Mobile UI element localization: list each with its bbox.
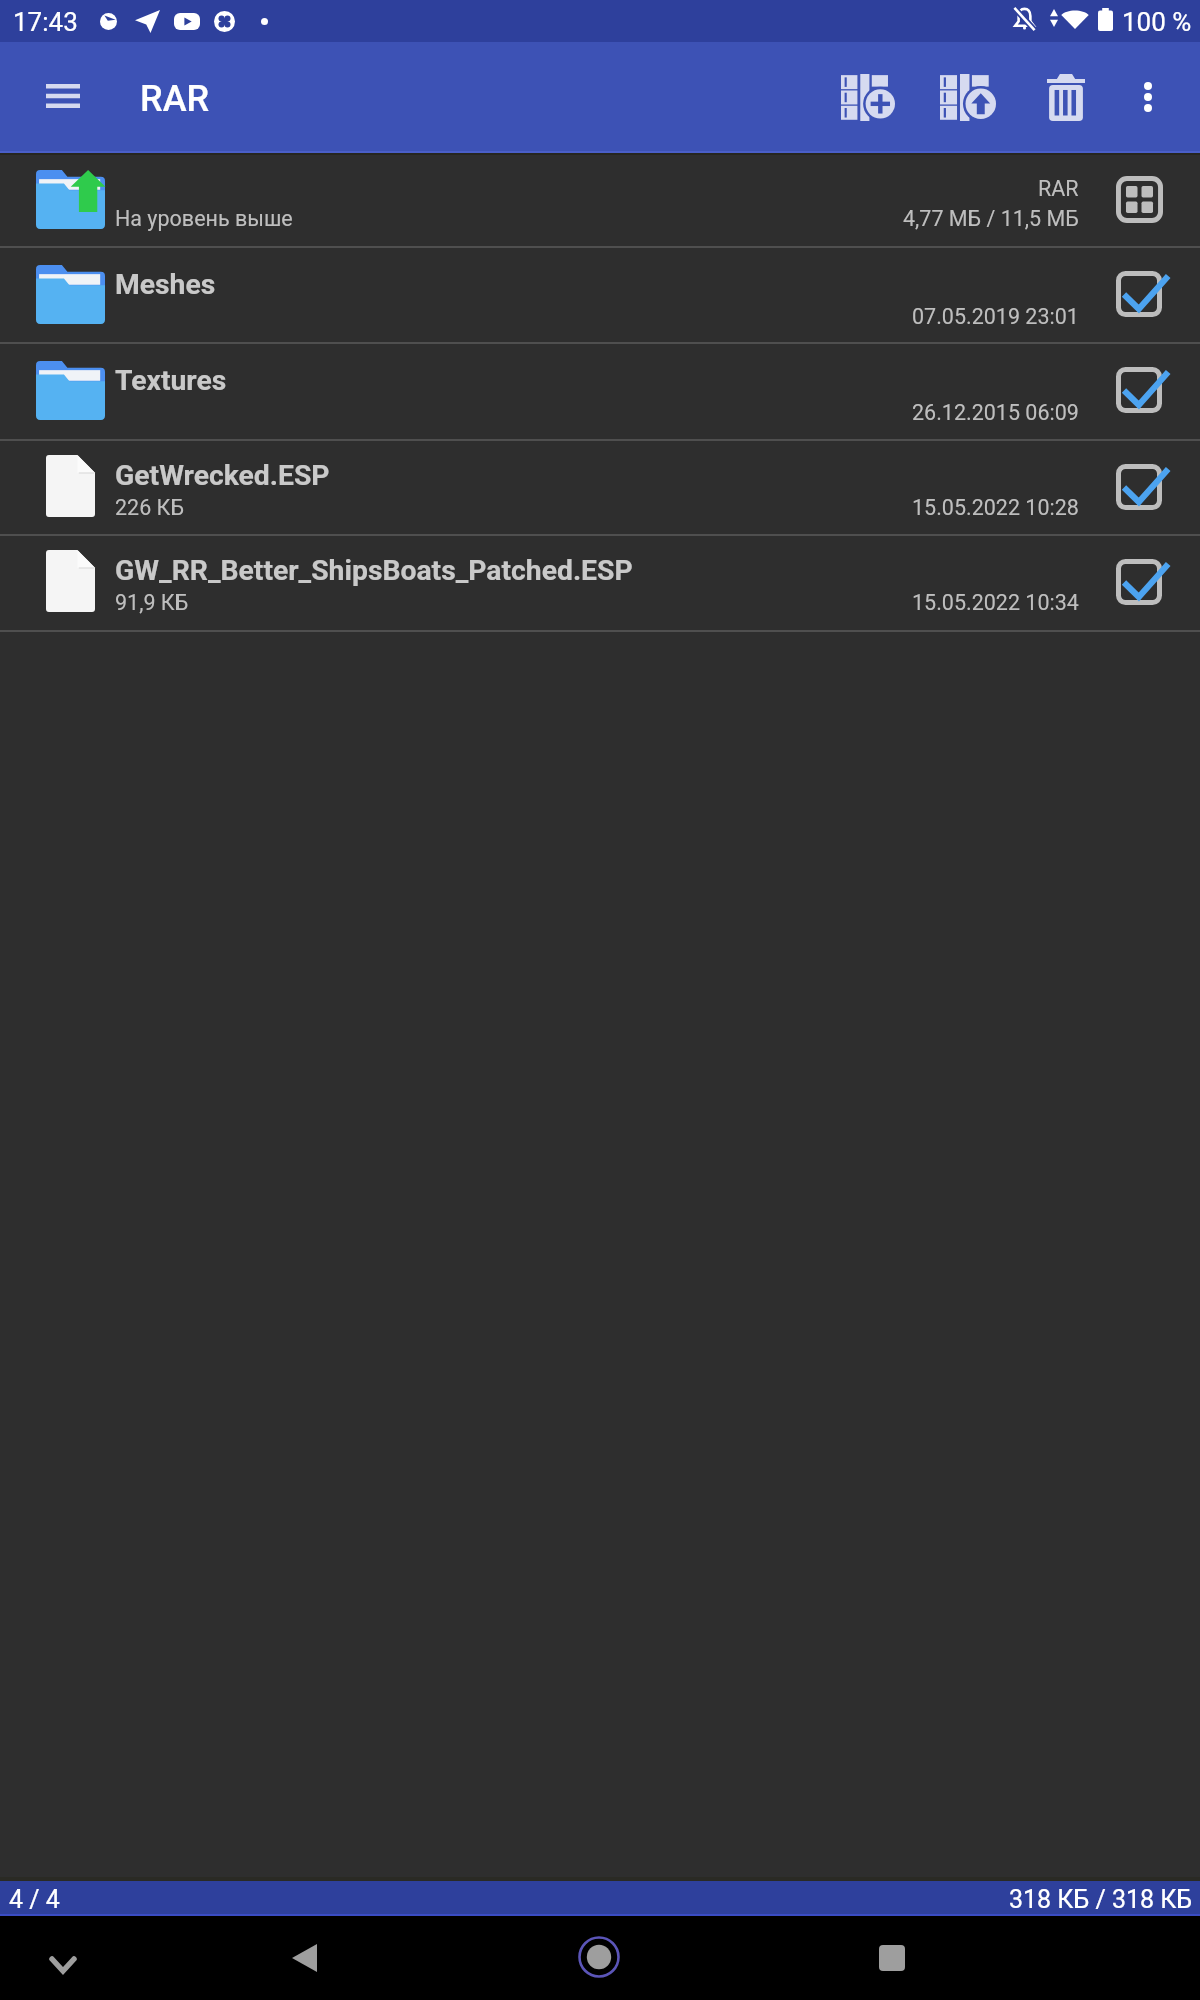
button[interactable]: Select Textures bbox=[1103, 352, 1183, 432]
staticText: Textures bbox=[115, 364, 227, 397]
staticText: 4 / 4 bbox=[9, 1885, 60, 1914]
button[interactable]: Extract archive bbox=[920, 49, 1016, 145]
button[interactable]: Back bbox=[240, 1916, 380, 2000]
staticText: 91,9 КБ bbox=[115, 590, 189, 615]
staticText: 100 % bbox=[1122, 7, 1192, 37]
staticText: 4,77 МБ / 11,5 МБ bbox=[903, 206, 1079, 231]
button[interactable]: Navigation menu bbox=[15, 48, 111, 144]
button[interactable]: Meshes bbox=[0, 248, 1200, 344]
button[interactable]: Add to archive bbox=[820, 49, 916, 145]
button[interactable]: Select GetWrecked.ESP bbox=[1103, 449, 1183, 529]
staticText: 318 КБ / 318 КБ bbox=[1009, 1885, 1193, 1914]
staticText: Meshes bbox=[115, 268, 216, 301]
staticText: RAR bbox=[140, 78, 210, 120]
button[interactable]: Textures bbox=[0, 344, 1200, 441]
staticText: 17:43 bbox=[13, 7, 78, 37]
staticText: 226 КБ bbox=[115, 495, 184, 520]
staticText: 15.05.2022 10:34 bbox=[912, 590, 1079, 615]
staticText: 07.05.2019 23:01 bbox=[912, 304, 1079, 329]
button[interactable]: GetWrecked.ESP bbox=[0, 441, 1200, 536]
button[interactable]: Delete bbox=[1018, 49, 1114, 145]
button[interactable]: Select GW_RR_Better_ShipsBoats_Patched.E… bbox=[1103, 544, 1183, 624]
button[interactable]: Select Meshes bbox=[1103, 256, 1183, 336]
button[interactable]: GW_RR_Better_ShipsBoats_Patched.ESP bbox=[0, 536, 1200, 632]
button[interactable]: На уровень выше bbox=[0, 153, 1200, 248]
button[interactable]: Change view mode bbox=[1099, 159, 1179, 239]
staticText: На уровень выше bbox=[115, 206, 293, 231]
button[interactable]: Hide keyboard bbox=[0, 1916, 140, 2000]
button[interactable]: Recent apps bbox=[822, 1916, 962, 2000]
button[interactable]: Home bbox=[530, 1916, 670, 2000]
staticText: 15.05.2022 10:28 bbox=[912, 495, 1079, 520]
button[interactable]: More options bbox=[1100, 49, 1196, 145]
staticText: GetWrecked.ESP bbox=[115, 459, 330, 492]
staticText: GW_RR_Better_ShipsBoats_Patched.ESP bbox=[115, 554, 633, 587]
staticText: 26.12.2015 06:09 bbox=[912, 400, 1079, 425]
staticText: RAR bbox=[1038, 176, 1079, 201]
